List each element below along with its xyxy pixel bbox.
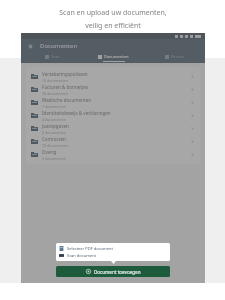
staticText: 4 documenten [42,117,66,122]
button[interactable]: Documenten [83,53,144,63]
button[interactable]: Contracten [26,135,200,148]
staticText: Jaaropgaven [42,123,69,129]
button[interactable]: Medische documenten [26,96,200,109]
staticText: Scan en upload uw documenten, [59,8,167,18]
staticText: Scan [51,54,60,59]
staticText: Identiteitsbewijs & verklaringen [42,110,111,116]
button[interactable]: Recent [144,53,205,63]
staticText: 9 documenten [42,130,66,135]
staticText: Scan document [67,253,97,258]
staticText: 7 documenten [42,104,66,109]
button[interactable]: Selecteer PDF document [56,245,170,252]
button[interactable]: Scan [21,53,83,63]
button[interactable]: Verzekeringspolissen [26,70,200,83]
staticText: Medische documenten [42,97,92,103]
staticText: Verzekeringspolissen [42,71,88,77]
staticText: 12 documenten [42,78,68,83]
button[interactable]: Scan document [56,252,170,259]
button[interactable]: Facturen & bonnetjes [26,83,200,96]
staticText: Facturen & bonnetjes [42,84,89,90]
staticText: Document toevoegen [94,269,141,275]
button[interactable]: Profiel [26,42,35,51]
staticText: Selecteer PDF document [67,246,113,251]
staticText: 15 documenten [42,143,68,148]
button[interactable]: Overig [26,148,200,161]
button[interactable]: Document toevoegen [56,266,170,277]
staticText: Documenten [40,42,78,50]
staticText: Recent [171,54,184,59]
staticText: Overig [42,149,57,155]
staticText: Contracten [42,136,66,142]
staticText: Documenten [104,54,129,59]
button[interactable]: Identiteitsbewijs & verklaringen [26,109,200,122]
staticText: 3 documenten [42,156,66,161]
button[interactable]: Jaaropgaven [26,122,200,135]
staticText: veilig en efficiënt [85,21,141,31]
staticText: 28 documenten [42,91,68,96]
